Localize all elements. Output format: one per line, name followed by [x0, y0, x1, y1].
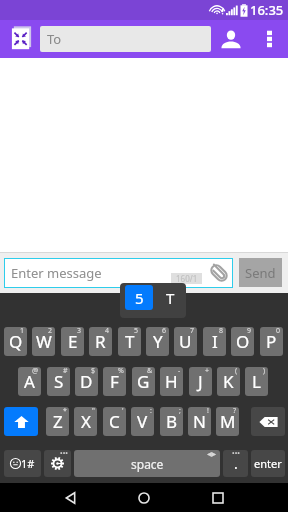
staticText: N — [193, 410, 206, 433]
button[interactable]: Collapse — [10, 25, 34, 51]
button[interactable]: To — [40, 26, 211, 52]
staticText: 2 — [48, 327, 53, 336]
button[interactable]: Shift — [4, 407, 38, 436]
button[interactable]: O — [231, 327, 254, 356]
button[interactable]: H — [160, 367, 183, 396]
staticText: 8 — [219, 327, 224, 336]
staticText: G — [137, 370, 150, 393]
button[interactable]: K — [217, 367, 240, 396]
staticText: ? — [233, 407, 237, 416]
button[interactable]: E — [61, 327, 84, 356]
staticText: @ — [32, 367, 39, 376]
button[interactable]: Enter message — [4, 258, 233, 288]
button[interactable]: Backspace — [251, 407, 285, 436]
button[interactable]: Symbols — [4, 450, 41, 477]
staticText: 6 — [162, 327, 167, 336]
staticText: B — [166, 410, 178, 433]
button[interactable]: Y — [146, 327, 169, 356]
staticText: 4 — [105, 327, 110, 336]
staticText: ) — [263, 367, 266, 376]
staticText: Z — [53, 410, 63, 433]
staticText: 3 — [77, 327, 82, 336]
button[interactable]: J — [189, 367, 212, 396]
staticText: C — [109, 410, 120, 433]
button[interactable]: G — [132, 367, 155, 396]
button[interactable]: enter — [251, 450, 285, 477]
button[interactable]: More options — [255, 24, 283, 54]
staticText: D — [80, 370, 93, 393]
button[interactable]: Contacts — [216, 24, 246, 54]
staticText: enter — [254, 456, 282, 471]
staticText: T — [166, 288, 175, 308]
staticText: Y — [153, 330, 163, 353]
staticText: 5 — [135, 288, 144, 308]
staticText: 1# — [21, 456, 35, 471]
staticText: Q — [9, 330, 23, 353]
staticText: + — [205, 367, 210, 376]
staticText: E — [68, 330, 78, 353]
button[interactable]: Input settings — [44, 450, 71, 477]
staticText: ; — [179, 407, 181, 416]
staticText: F — [110, 370, 119, 393]
button[interactable]: 5 — [125, 285, 153, 310]
staticText: W — [36, 330, 52, 353]
staticText: space — [131, 456, 164, 472]
staticText: 0 — [276, 327, 281, 336]
staticText: Enter message — [11, 264, 102, 282]
staticText: J — [198, 370, 203, 393]
staticText: O — [236, 330, 250, 353]
staticText: $ — [91, 367, 96, 376]
staticText: Send — [245, 264, 276, 282]
staticText: 16:35 — [250, 1, 284, 19]
staticText: ' — [122, 407, 124, 416]
staticText: ◀▶ — [207, 450, 217, 457]
button[interactable]: R — [89, 327, 112, 356]
button[interactable]: Recents — [204, 483, 232, 512]
staticText: - — [178, 367, 181, 376]
staticText: 160/1 — [176, 273, 198, 284]
button[interactable]: F — [103, 367, 126, 396]
staticText: S — [54, 370, 64, 393]
button[interactable]: I — [203, 327, 226, 356]
staticText: & — [147, 367, 153, 376]
staticText: X — [81, 410, 91, 433]
staticText: R — [95, 330, 106, 353]
staticText: L — [252, 370, 261, 393]
button[interactable]: A — [18, 367, 41, 396]
button[interactable]: C — [103, 407, 126, 436]
staticText: 5 — [134, 327, 139, 336]
button[interactable]: S — [47, 367, 70, 396]
button[interactable]: space — [74, 450, 220, 477]
staticText: 1 — [20, 327, 25, 336]
button[interactable]: Home — [130, 483, 158, 512]
button[interactable]: Z — [46, 407, 69, 436]
button[interactable]: W — [32, 327, 55, 356]
button[interactable]: Back — [56, 483, 84, 512]
button[interactable]: V — [131, 407, 154, 436]
staticText: T — [125, 330, 135, 353]
button[interactable]: L — [245, 367, 268, 396]
button[interactable]: B — [160, 407, 183, 436]
staticText: ! — [207, 407, 209, 416]
button[interactable]: N — [188, 407, 211, 436]
staticText: ••• — [60, 450, 68, 459]
staticText: ••• — [232, 450, 240, 459]
staticText: " — [92, 407, 95, 416]
button[interactable]: Q — [4, 327, 27, 356]
button[interactable]: P — [260, 327, 283, 356]
staticText: A — [24, 370, 35, 393]
button[interactable]: Send — [239, 258, 282, 287]
button[interactable]: . — [223, 450, 248, 477]
button[interactable]: D — [75, 367, 98, 396]
button[interactable]: U — [174, 327, 197, 356]
staticText: P — [266, 330, 277, 353]
staticText: * — [63, 407, 67, 416]
staticText: : — [150, 407, 152, 416]
button[interactable]: T — [118, 327, 141, 356]
staticText: I — [212, 330, 218, 353]
staticText: 9 — [247, 327, 252, 336]
button[interactable]: M — [216, 407, 239, 436]
staticText: % — [118, 367, 124, 376]
button[interactable]: X — [74, 407, 97, 436]
button[interactable]: T — [157, 285, 183, 310]
